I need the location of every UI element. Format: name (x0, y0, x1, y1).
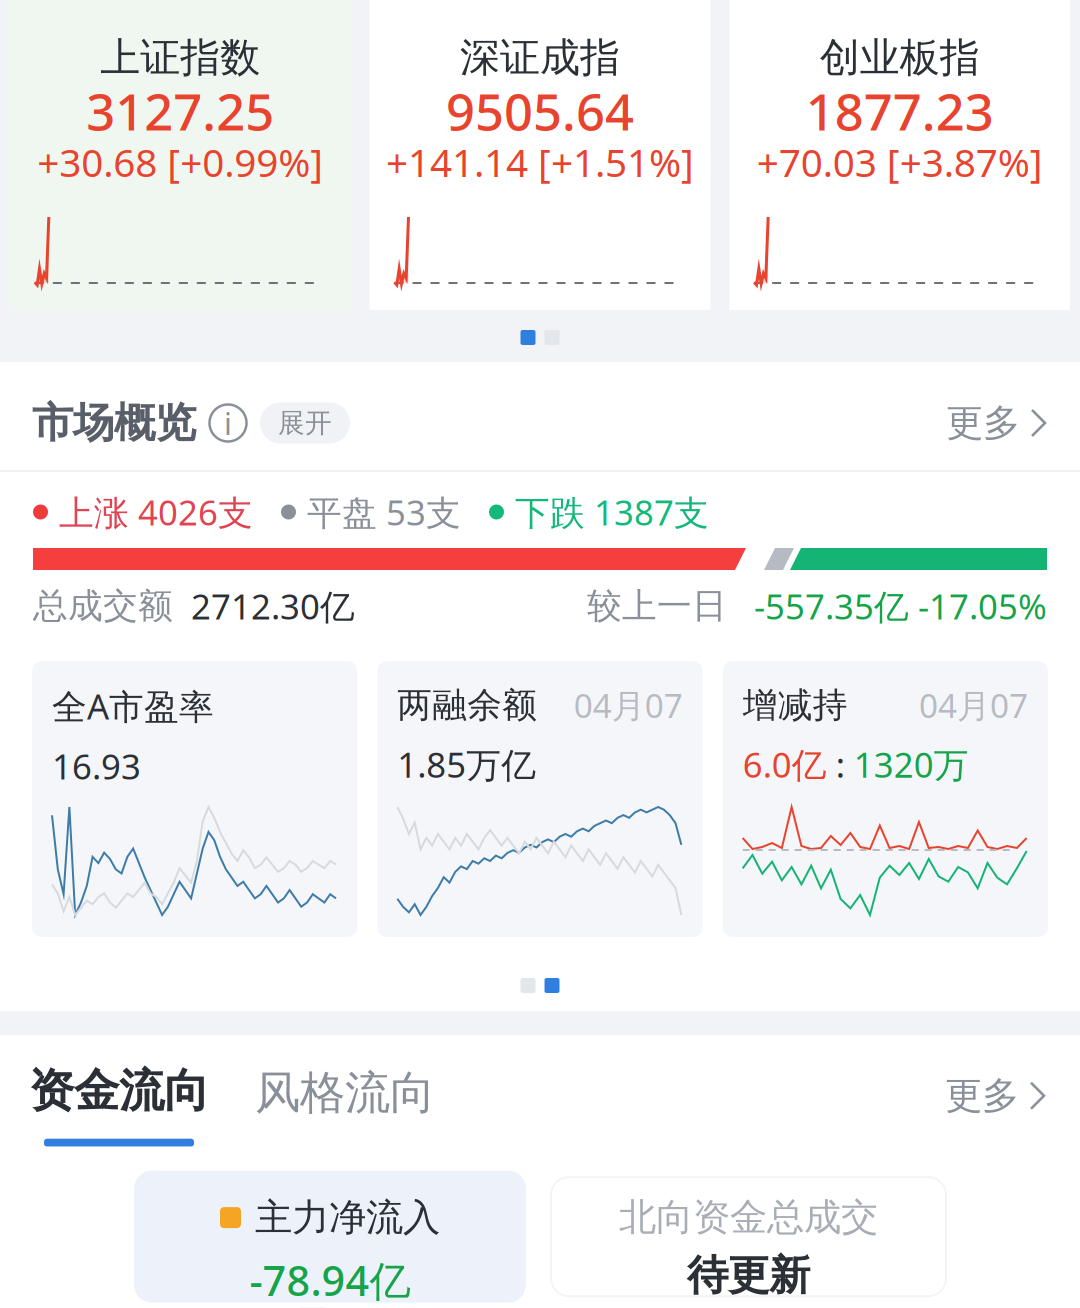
staticText: 全A市盈率 (52, 683, 214, 729)
staticText: +70.03 [+3.87%] (757, 136, 1043, 188)
staticText: -557.35亿 -17.05% (727, 583, 1047, 629)
staticText: 风格流向 (255, 1065, 435, 1121)
staticText: 6.0亿 (743, 741, 827, 787)
button[interactable]: 全A市盈率 (32, 661, 357, 937)
staticText: -78.94亿 (249, 1252, 410, 1307)
staticText: 较上一日 (587, 585, 727, 627)
staticText: 更多 (946, 400, 1020, 446)
staticText: 04月07 (574, 683, 683, 727)
staticText: 04月07 (919, 683, 1028, 727)
staticText: 主力净流入 (255, 1195, 440, 1241)
staticText: 市场概览 (32, 398, 196, 448)
button[interactable]: 资金流向 (29, 1063, 209, 1147)
staticText: 北向资金总成交 (619, 1194, 878, 1240)
staticText: 下跌 1387支 (515, 489, 709, 535)
staticText: 展开 (278, 407, 332, 439)
button[interactable]: 展开 (260, 402, 350, 443)
staticText: 1.85万亿 (397, 741, 536, 787)
staticText: 9505.64 (446, 77, 634, 144)
staticText: +30.68 [+0.99%] (37, 136, 323, 188)
staticText: 资金流向 (29, 1063, 209, 1119)
button[interactable]: 更多 (946, 400, 1048, 446)
button[interactable]: 说明 (196, 396, 260, 450)
staticText: 上证指数 (100, 33, 260, 82)
button[interactable]: 上证指数 (10, 0, 351, 310)
staticText: 总成交额 (33, 585, 173, 627)
staticText: 创业板指 (820, 33, 980, 82)
button[interactable]: 主力净流入 (134, 1171, 526, 1303)
staticText: 平盘 53支 (307, 489, 461, 535)
staticText: 两融余额 (397, 684, 537, 726)
staticText: 1877.23 (806, 77, 994, 144)
staticText: i (224, 403, 232, 443)
staticText: 16.93 (52, 743, 141, 789)
staticText: 1320万 (854, 741, 969, 787)
button[interactable]: 北向资金总成交 (551, 1177, 946, 1296)
button[interactable]: 增减持 (723, 661, 1048, 937)
button[interactable]: 深证成指 (370, 0, 710, 310)
staticText: 3127.25 (86, 77, 274, 144)
staticText: 更多 (945, 1073, 1019, 1119)
button[interactable]: 指数页面 1 / 2 (520, 330, 559, 362)
staticText: 增减持 (743, 684, 848, 726)
staticText: 2712.30亿 (173, 583, 355, 629)
button[interactable]: 指标页面 2 / 2 (520, 978, 559, 1011)
button[interactable]: 风格流向 (209, 1065, 435, 1147)
button[interactable]: 更多 (945, 1073, 1047, 1147)
button[interactable]: 创业板指 (729, 0, 1070, 310)
staticText: +141.14 [+1.51%] (386, 136, 694, 188)
staticText: : (827, 741, 854, 787)
staticText: 上涨 4026支 (59, 489, 253, 535)
button[interactable]: 两融余额 (377, 661, 703, 937)
staticText: 待更新 (687, 1250, 810, 1301)
staticText: 深证成指 (460, 33, 620, 82)
